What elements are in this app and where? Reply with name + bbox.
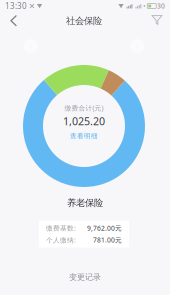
button[interactable]: Filter bbox=[144, 8, 170, 32]
staticText: 社会保险 bbox=[66, 15, 102, 27]
staticText: 查看明细 bbox=[70, 132, 98, 140]
staticText: 变更记录 bbox=[69, 272, 101, 282]
staticText: 30 bbox=[157, 2, 165, 10]
button[interactable]: 变更记录 bbox=[55, 267, 115, 287]
staticText: 个人缴纳: bbox=[46, 235, 76, 244]
staticText: 13:30 bbox=[5, 1, 27, 11]
staticText: 9,762.00元 bbox=[87, 224, 122, 232]
button[interactable]: Back bbox=[1, 9, 27, 33]
button[interactable]: 查看明细 bbox=[68, 130, 100, 142]
staticText: 缴费合计(元) bbox=[64, 104, 103, 112]
staticText: 缴费基数: bbox=[46, 224, 76, 232]
staticText: 1,025.20 bbox=[63, 114, 105, 128]
staticText: 养老保险 bbox=[67, 197, 103, 209]
staticText: 781.00元 bbox=[93, 235, 122, 244]
